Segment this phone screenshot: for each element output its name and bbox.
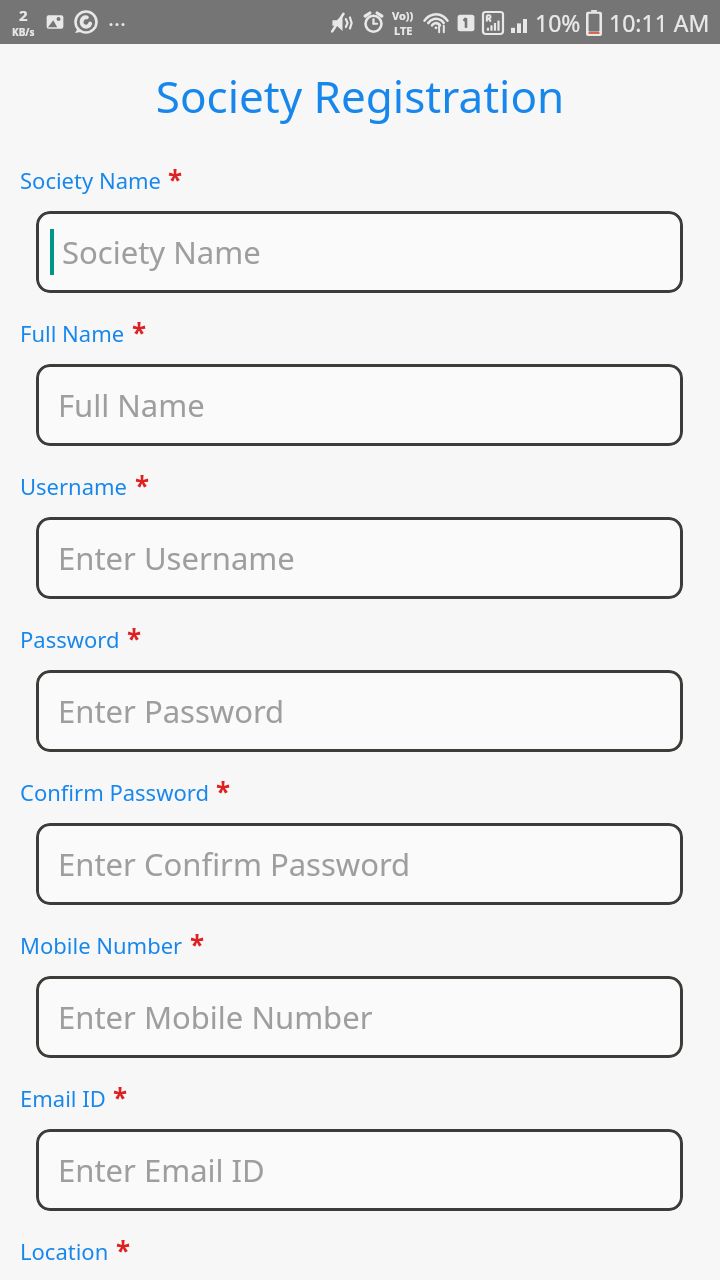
staticText: Username [20, 471, 128, 501]
button[interactable]: Enter Email ID [36, 1129, 683, 1211]
staticText: 10% [535, 7, 581, 38]
staticText: * [132, 315, 147, 350]
staticText: Society Registration [0, 66, 720, 126]
staticText: Society Name [62, 231, 261, 273]
staticText: Mobile Number [20, 930, 183, 960]
button[interactable]: Society Name [36, 211, 683, 293]
staticText: Full Name [20, 318, 125, 348]
staticText: Enter Mobile Number [58, 996, 373, 1038]
button[interactable]: Enter Username [36, 517, 683, 599]
staticText: * [127, 621, 142, 656]
staticText: * [113, 1080, 128, 1115]
staticText: Full Name [58, 384, 205, 426]
staticText: Enter Confirm Password [58, 843, 411, 885]
button[interactable]: Enter Confirm Password [36, 823, 683, 905]
staticText: * [116, 1233, 131, 1268]
staticText: KB/s [12, 25, 35, 39]
button[interactable]: Enter Password [36, 670, 683, 752]
staticText: 2 [19, 5, 28, 25]
staticText: * [135, 468, 150, 503]
staticText: LTE [394, 23, 413, 38]
staticText: Confirm Password [20, 777, 209, 807]
staticText: Enter Password [58, 690, 285, 732]
staticText: * [168, 162, 183, 197]
button[interactable]: Full Name [36, 364, 683, 446]
staticText: * [216, 774, 231, 809]
button[interactable]: Enter Mobile Number [36, 976, 683, 1058]
staticText: 10:11 AM [609, 7, 710, 38]
staticText: Society Name [20, 165, 161, 195]
staticText: Password [20, 624, 120, 654]
staticText: * [190, 927, 205, 962]
staticText: Enter Email ID [58, 1149, 265, 1191]
staticText: Enter Username [58, 537, 295, 579]
staticText: Email ID [20, 1083, 106, 1113]
staticText: Location [20, 1236, 109, 1266]
staticText: Vo)) [392, 8, 414, 23]
